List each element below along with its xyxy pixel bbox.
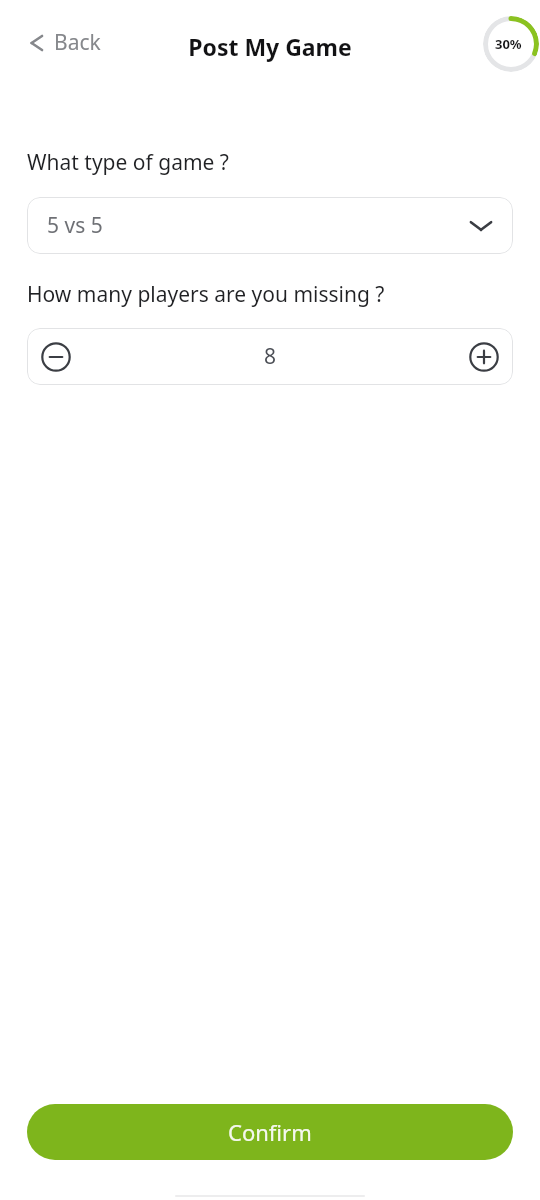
staticText: 30% [495,35,522,53]
staticText: What type of game ? [27,148,229,177]
button[interactable]: Decrease [34,335,78,379]
button[interactable]: Back [22,22,107,63]
staticText: 5 vs 5 [47,211,103,240]
staticText: How many players are you missing ? [27,280,385,309]
staticText: Confirm [228,1117,312,1147]
button[interactable]: 5 vs 5 [27,197,513,254]
staticText: Back [54,28,101,57]
button[interactable]: Confirm [27,1104,513,1160]
staticText: 8 [78,342,462,371]
button[interactable]: Progress 30 percent [483,16,539,72]
button[interactable]: Increase [462,335,506,379]
staticText: Post My Game [0,31,540,62]
